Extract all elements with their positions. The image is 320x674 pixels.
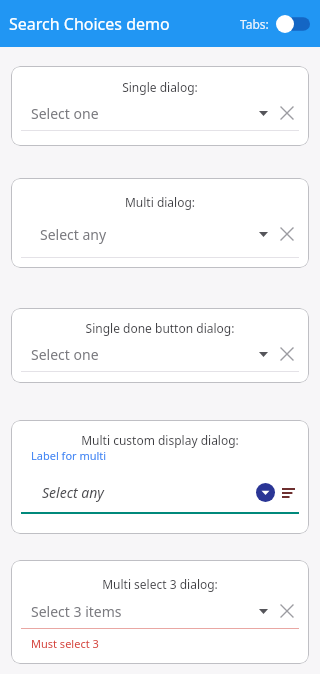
staticText: Multi select 3 dialog: [21,576,299,592]
staticText: Select any [40,225,254,244]
button[interactable]: Clear selection [277,224,297,244]
staticText: Select one [31,345,254,364]
button[interactable]: Open dropdown [254,104,272,122]
button[interactable]: Multi custom display dialog: [11,420,309,534]
staticText: Search Choices demo [9,13,170,35]
staticText: Tabs: [240,16,269,32]
button[interactable]: Clear selection [277,344,297,364]
button[interactable]: Clear selection [277,601,297,621]
staticText: Select one [31,104,254,123]
button[interactable]: Select one [21,344,299,372]
staticText: Single done button dialog: [21,320,299,336]
button[interactable]: Label for multi [31,448,299,463]
button[interactable]: Sort options [279,484,297,502]
button[interactable]: Multi select 3 dialog: [11,560,309,664]
button[interactable]: Select 3 items [21,601,299,629]
staticText: Select any [42,483,256,502]
button[interactable]: Open dropdown [254,345,272,363]
button[interactable]: Open dropdown [254,225,272,243]
button[interactable]: Open dropdown [256,483,275,502]
button[interactable]: Clear selection [277,103,297,123]
button[interactable]: Select any [21,224,299,258]
staticText: Label for multi [31,448,107,463]
button[interactable]: Select any [21,483,299,514]
button[interactable]: Multi dialog: [11,178,309,268]
staticText: Select 3 items [31,602,254,621]
button[interactable]: Tabs toggle [276,15,310,33]
staticText: Single dialog: [21,79,299,95]
staticText: Must select 3 [31,636,99,651]
button[interactable]: Single done button dialog: [11,308,309,383]
button[interactable]: Open dropdown [254,602,272,620]
staticText: Multi custom display dialog: [21,432,299,448]
button[interactable]: Select one [21,103,299,131]
staticText: Multi dialog: [21,194,299,210]
button[interactable]: Single dialog: [11,66,309,146]
